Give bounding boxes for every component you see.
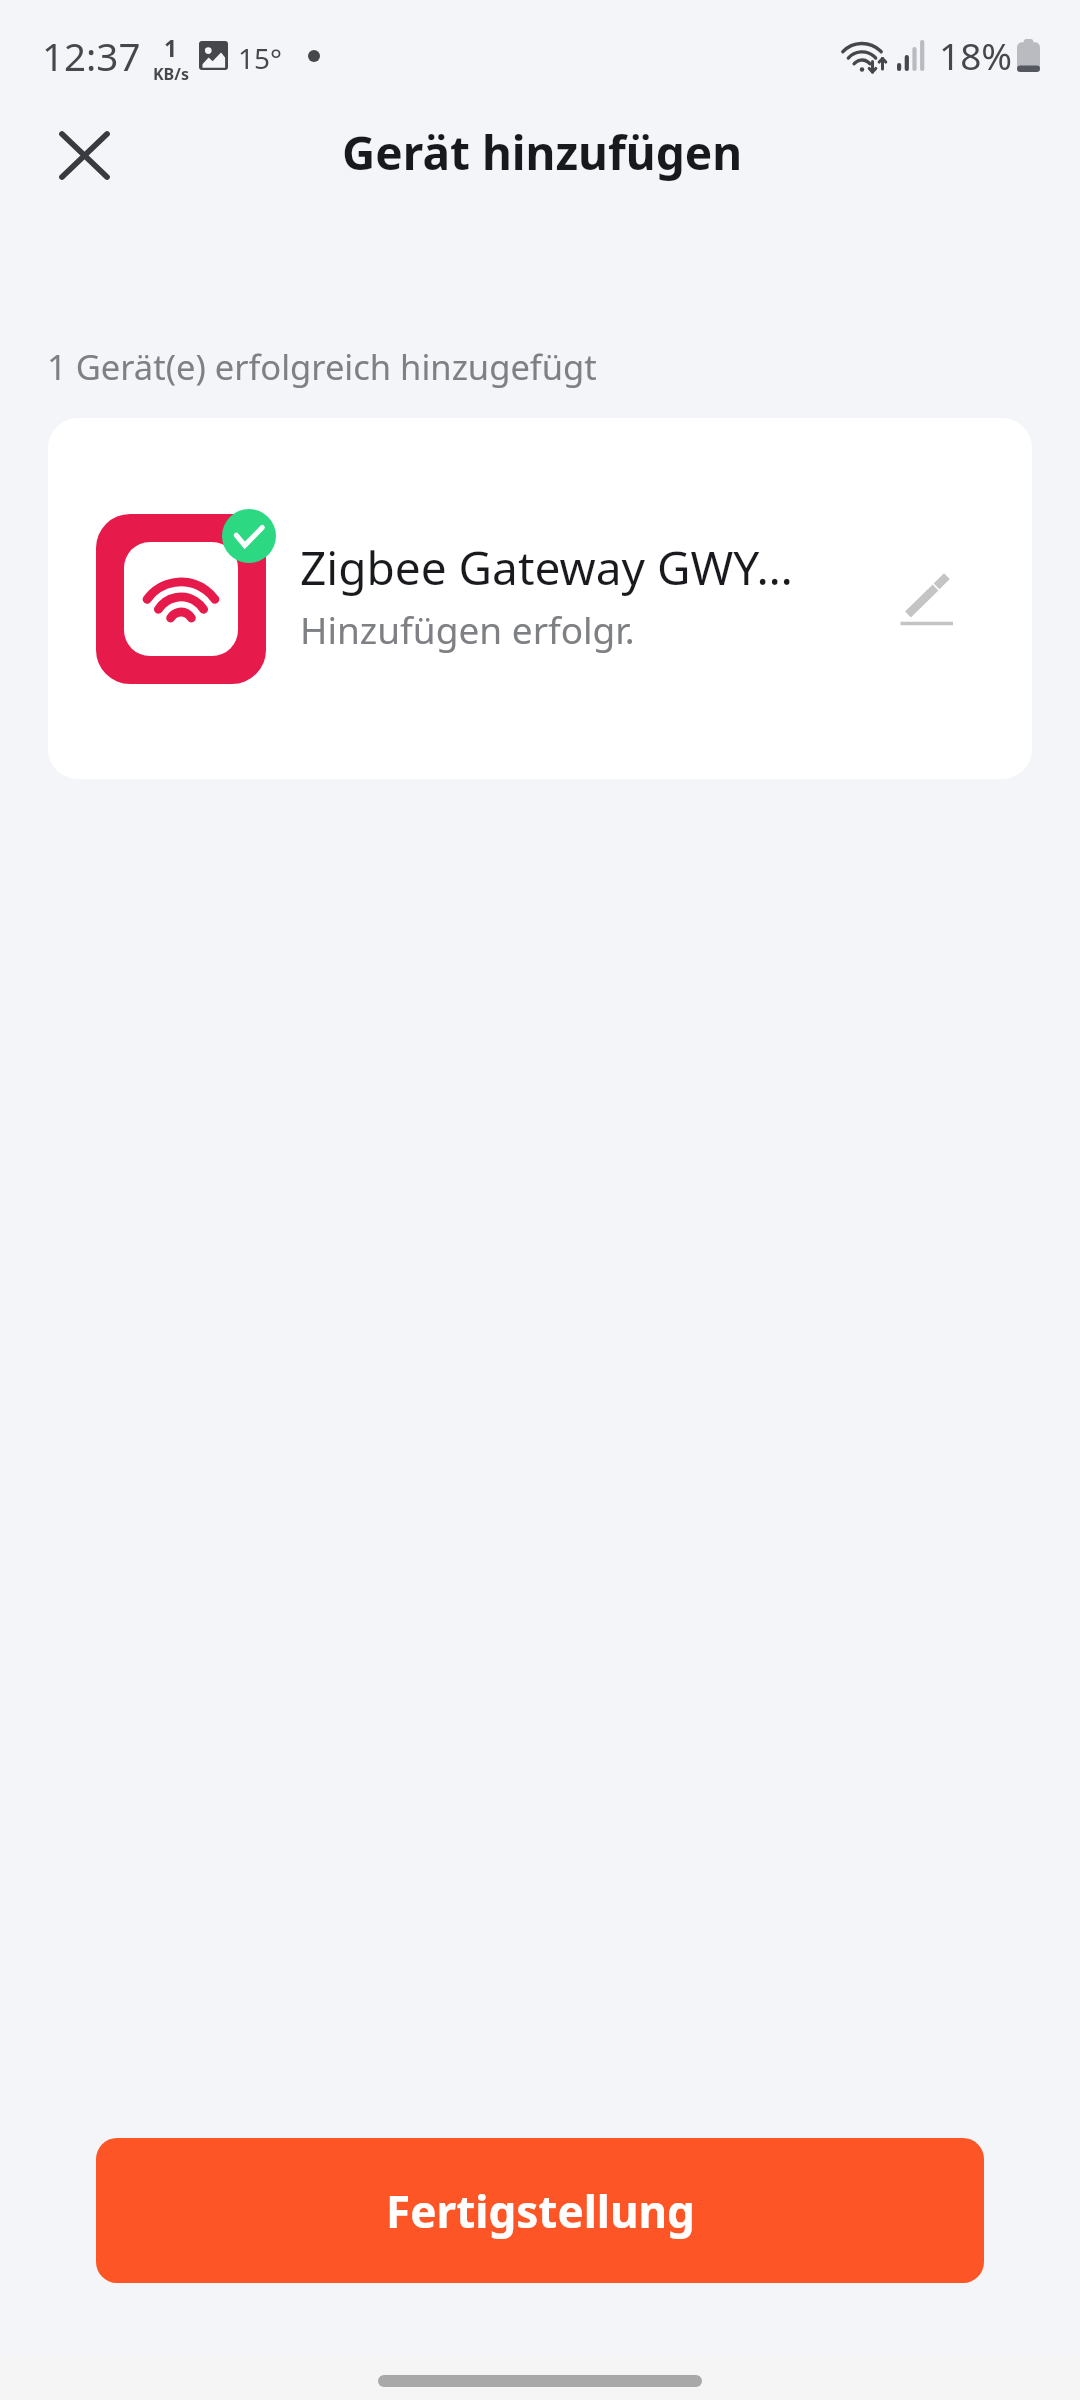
staticText: KB/s	[153, 63, 189, 85]
staticText: 12:37	[42, 30, 141, 82]
button[interactable]: Close	[24, 100, 144, 210]
staticText: 15°	[238, 39, 283, 77]
staticText: 1	[164, 32, 178, 63]
button[interactable]: Zigbee Gateway GWY…	[48, 418, 1032, 779]
staticText: Zigbee Gateway GWY…	[300, 536, 793, 599]
staticText: 1 Gerät(e) erfolgreich hinzugefügt	[47, 343, 597, 390]
staticText: 18%	[939, 30, 1013, 80]
staticText: Hinzufügen erfolgr.	[300, 604, 635, 654]
staticText: Fertigstellung	[386, 2181, 695, 2241]
button[interactable]: Fertigstellung	[96, 2138, 984, 2283]
staticText: Gerät hinzufügen	[342, 121, 743, 184]
button[interactable]: Edit	[867, 540, 987, 660]
